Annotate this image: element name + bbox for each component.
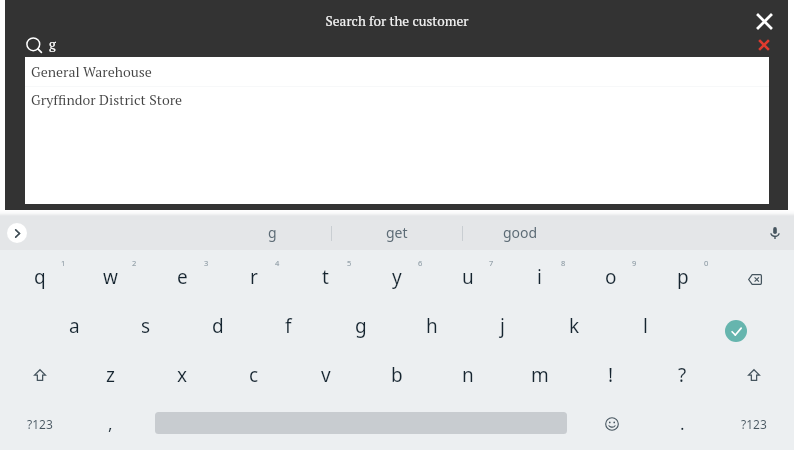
button[interactable]: u — [432, 252, 503, 301]
staticText: 5 — [347, 258, 352, 268]
button[interactable]: d — [182, 301, 253, 350]
button[interactable]: n — [432, 350, 503, 399]
button[interactable]: g — [232, 215, 312, 249]
button[interactable]: i — [504, 252, 575, 301]
staticText: x — [177, 362, 188, 388]
staticText: o — [605, 264, 617, 290]
button[interactable]: y — [361, 252, 432, 301]
button[interactable]: good — [480, 215, 560, 249]
staticText: 1 — [61, 258, 66, 268]
button[interactable]: Shift — [4, 350, 75, 399]
button[interactable]: l — [610, 301, 681, 350]
button[interactable]: Expand suggestions — [7, 223, 27, 243]
staticText: i — [537, 264, 542, 290]
staticText: , — [108, 412, 113, 435]
other: Shift — [34, 369, 46, 381]
staticText: good — [503, 223, 538, 242]
staticText: j — [500, 313, 505, 339]
staticText: ?123 — [741, 416, 767, 432]
button[interactable]: m — [504, 350, 575, 399]
button[interactable]: Close — [749, 6, 779, 36]
staticText: u — [462, 264, 474, 290]
button[interactable] — [18, 30, 738, 56]
staticText: e — [177, 264, 188, 290]
button[interactable]: Backspace — [719, 252, 790, 301]
button[interactable]: . — [647, 399, 718, 448]
staticText: 7 — [489, 258, 494, 268]
button[interactable]: get — [357, 215, 437, 249]
button[interactable]: o — [575, 252, 646, 301]
button[interactable]: Enter — [725, 320, 747, 342]
button[interactable]: g — [325, 301, 396, 350]
staticText: m — [531, 362, 549, 388]
staticText: 4 — [275, 258, 280, 268]
staticText: g — [49, 35, 56, 52]
staticText: d — [212, 313, 224, 339]
staticText: t — [322, 264, 329, 290]
staticText: a — [69, 313, 80, 339]
staticText: p — [677, 264, 689, 290]
staticText: r — [250, 264, 258, 290]
staticText: g — [268, 223, 277, 242]
staticText: k — [569, 313, 580, 339]
staticText: General Warehouse — [31, 62, 152, 81]
other: Shift — [748, 369, 760, 381]
button[interactable]: Clear query — [754, 35, 774, 55]
staticText: 2 — [132, 258, 137, 268]
staticText: 9 — [632, 258, 637, 268]
staticText: w — [103, 264, 118, 290]
button[interactable]: ! — [575, 350, 646, 399]
button[interactable]: s — [110, 301, 181, 350]
staticText: ? — [678, 362, 687, 388]
button[interactable]: ?123 — [718, 399, 789, 448]
button[interactable]: ?123 — [4, 399, 75, 448]
staticText: q — [34, 264, 46, 290]
staticText: g — [355, 313, 367, 339]
button[interactable]: k — [539, 301, 610, 350]
button[interactable]: x — [147, 350, 218, 399]
button[interactable]: ? — [647, 350, 718, 399]
staticText: c — [249, 362, 259, 388]
staticText: Search for the customer — [0, 12, 794, 30]
button[interactable]: Voice input — [764, 222, 786, 244]
staticText: ! — [608, 362, 614, 388]
button[interactable]: Shift — [718, 350, 789, 399]
button[interactable]: q — [4, 252, 75, 301]
button[interactable]: r — [218, 252, 289, 301]
staticText: 3 — [204, 258, 209, 268]
staticText: . — [680, 412, 685, 435]
button[interactable]: z — [75, 350, 146, 399]
staticText: l — [643, 313, 648, 339]
staticText: v — [321, 362, 331, 388]
button[interactable]: e — [147, 252, 218, 301]
button[interactable]: a — [39, 301, 110, 350]
button[interactable]: j — [467, 301, 538, 350]
staticText: z — [106, 362, 115, 388]
staticText: y — [392, 264, 402, 290]
button[interactable]: v — [290, 350, 361, 399]
staticText: s — [141, 313, 151, 339]
button[interactable]: w — [75, 252, 146, 301]
button[interactable]: p — [647, 252, 718, 301]
staticText: Gryffindor District Store — [31, 90, 183, 109]
staticText: ?123 — [27, 416, 53, 432]
button[interactable]: Gryffindor District Store — [25, 85, 769, 114]
button[interactable]: b — [361, 350, 432, 399]
other: Emoji — [605, 417, 619, 431]
button[interactable]: , — [75, 399, 146, 448]
button[interactable]: General Warehouse — [25, 57, 769, 86]
button[interactable]: h — [396, 301, 467, 350]
staticText: f — [285, 313, 292, 339]
button[interactable]: c — [218, 350, 289, 399]
button[interactable]: t — [290, 252, 361, 301]
button[interactable]: f — [253, 301, 324, 350]
staticText: n — [462, 362, 474, 388]
button[interactable]: Emoji — [575, 399, 646, 448]
staticText: 6 — [418, 258, 423, 268]
staticText: h — [426, 313, 438, 339]
staticText: b — [391, 362, 403, 388]
other: Backspace — [748, 274, 762, 285]
staticText: get — [386, 223, 408, 242]
staticText: 0 — [704, 258, 709, 268]
